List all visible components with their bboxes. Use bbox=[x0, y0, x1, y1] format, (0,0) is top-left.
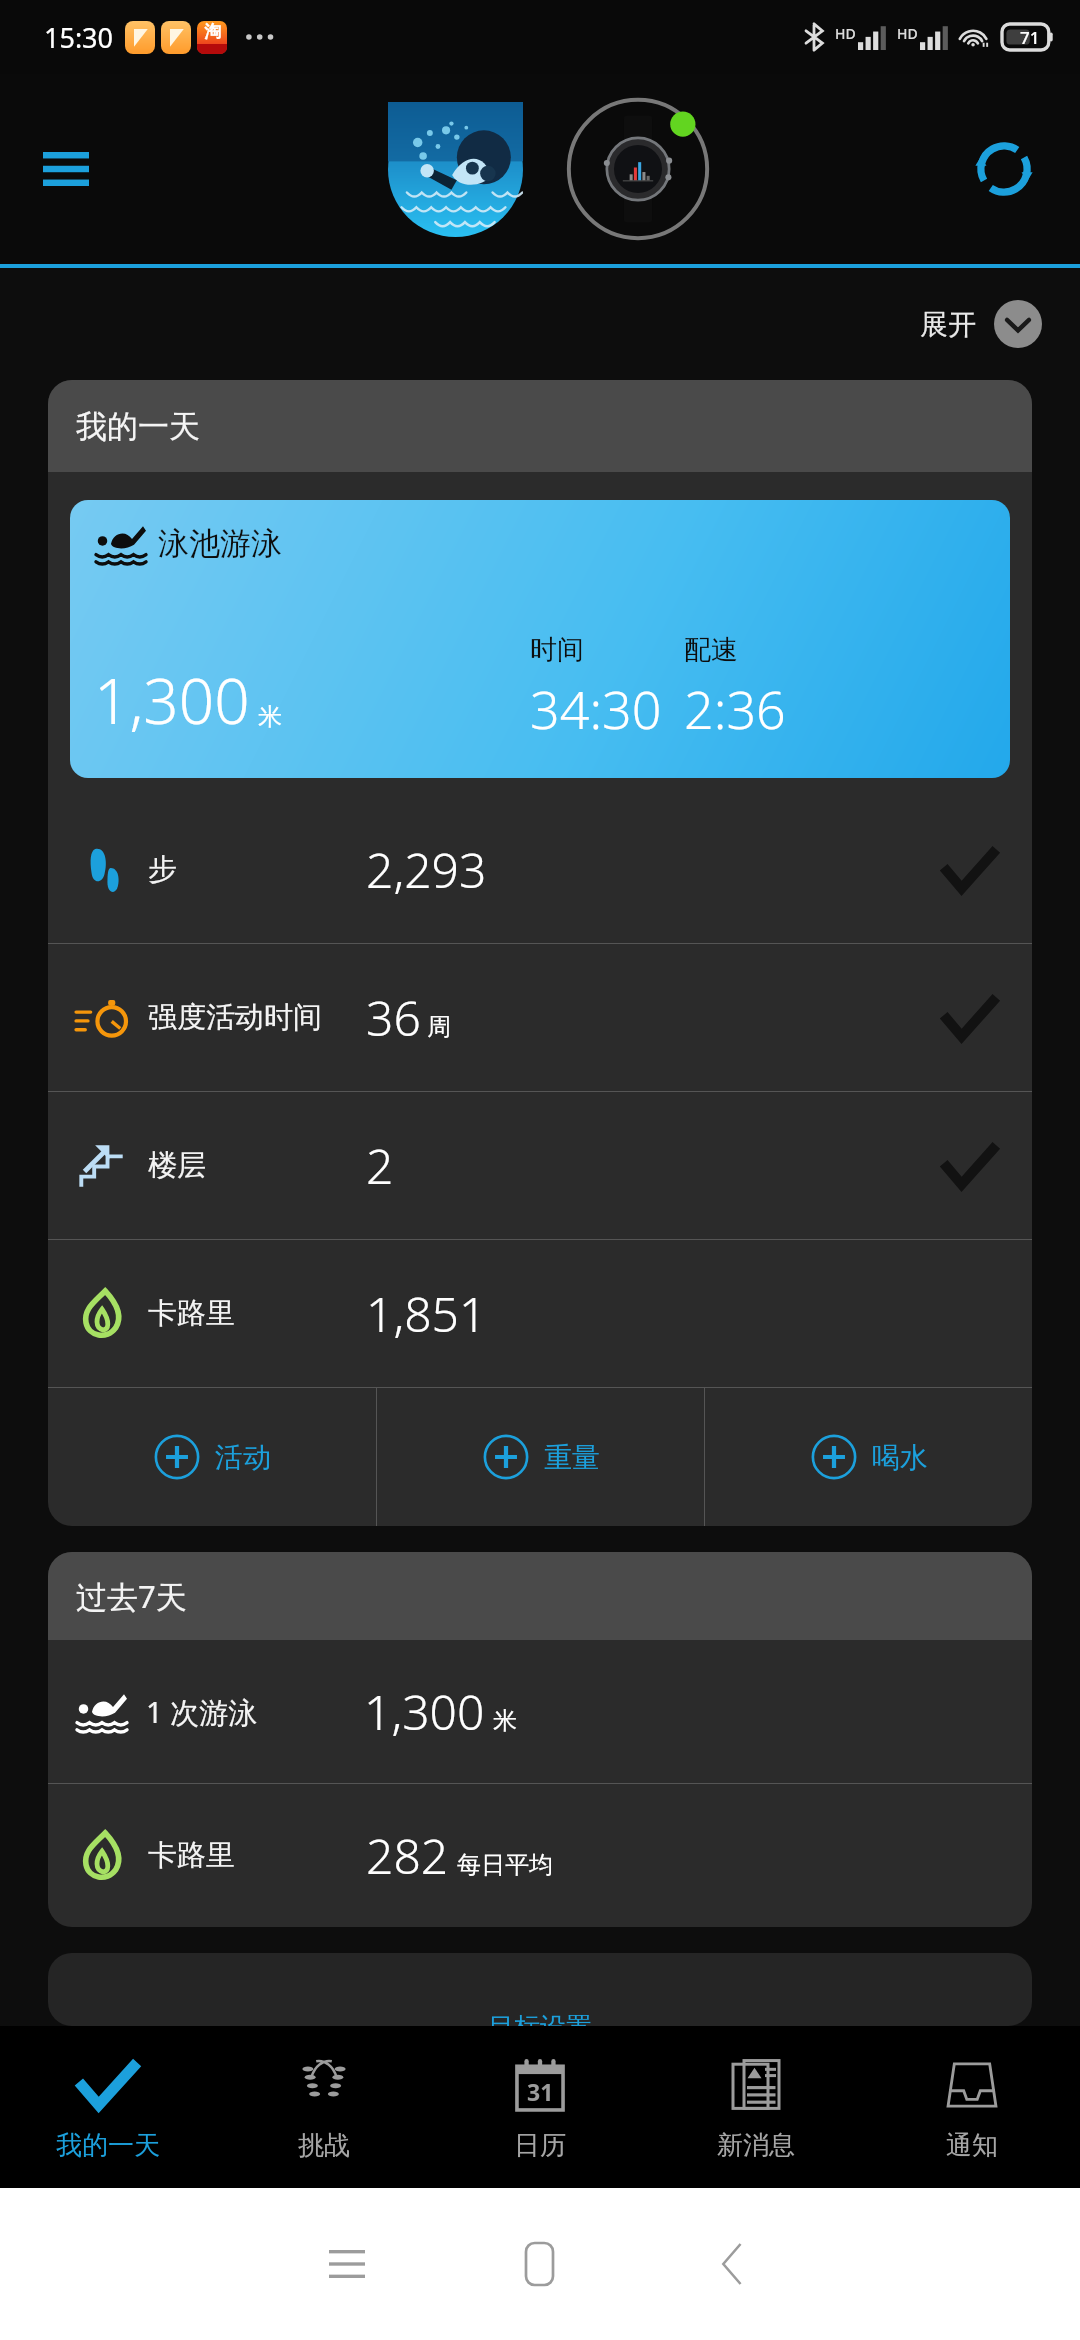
staticText: 36 bbox=[366, 985, 421, 1050]
staticText: 日历 bbox=[514, 2129, 566, 2162]
staticText: 15:30 bbox=[44, 19, 114, 56]
button[interactable]: 过去7天 bbox=[48, 1552, 1032, 1640]
staticText: 34:30 bbox=[530, 673, 662, 744]
button[interactable]: 我的一天 bbox=[0, 2026, 216, 2188]
staticText: 米 bbox=[258, 702, 282, 732]
button[interactable]: Device bbox=[562, 93, 714, 245]
button[interactable]: 新消息 bbox=[648, 2026, 864, 2188]
button[interactable]: 步 bbox=[48, 796, 1032, 943]
button[interactable]: 通知 bbox=[864, 2026, 1080, 2188]
staticText: 淘 bbox=[204, 21, 221, 42]
staticText: 新消息 bbox=[717, 2129, 795, 2162]
staticText: 步 bbox=[148, 851, 366, 888]
staticText: 楼层 bbox=[148, 1147, 366, 1184]
staticText: 1,300 bbox=[94, 658, 250, 742]
staticText: 31 bbox=[527, 2076, 554, 2107]
staticText: 282 bbox=[366, 1823, 449, 1888]
staticText: 卡路里 bbox=[148, 1837, 366, 1874]
staticText: 展开 bbox=[920, 307, 976, 342]
staticText: 1,851 bbox=[366, 1281, 487, 1346]
button[interactable]: 强度活动时间 bbox=[48, 944, 1032, 1091]
staticText: HD bbox=[835, 24, 856, 43]
staticText: HD bbox=[897, 24, 918, 43]
staticText: 2,293 bbox=[366, 837, 487, 902]
staticText: 目标设置 bbox=[488, 2011, 592, 2026]
staticText: 每日平均 bbox=[457, 1850, 553, 1880]
button[interactable]: 喝水 bbox=[705, 1388, 1032, 1526]
staticText: 卡路里 bbox=[148, 1295, 366, 1332]
button[interactable]: Recents bbox=[250, 2229, 443, 2299]
button[interactable]: Menu bbox=[30, 133, 102, 205]
button[interactable]: 楼层 bbox=[48, 1092, 1032, 1239]
staticText: 71 bbox=[1020, 26, 1040, 49]
staticText: 过去7天 bbox=[76, 1575, 187, 1617]
staticText: 米 bbox=[493, 1706, 517, 1736]
staticText: 时间 bbox=[530, 633, 584, 667]
staticText: 喝水 bbox=[872, 1440, 928, 1475]
staticText: 我的一天 bbox=[76, 407, 200, 446]
button[interactable]: 卡路里 bbox=[48, 1240, 1032, 1387]
button[interactable]: 展开 bbox=[912, 292, 1050, 356]
button[interactable]: 31 bbox=[432, 2026, 648, 2188]
button[interactable]: 挑战 bbox=[216, 2026, 432, 2188]
staticText: 重量 bbox=[544, 1440, 600, 1475]
button[interactable]: 活动 bbox=[48, 1388, 376, 1526]
button[interactable]: 1 次游泳 bbox=[48, 1640, 1032, 1783]
staticText: 配速 bbox=[684, 633, 738, 667]
staticText: 泳池游泳 bbox=[158, 524, 282, 563]
staticText: 周 bbox=[427, 1012, 451, 1042]
button[interactable]: Back bbox=[636, 2229, 829, 2299]
button[interactable]: 我的一天 bbox=[48, 380, 1032, 472]
staticText: 挑战 bbox=[298, 2129, 350, 2162]
staticText: 2:36 bbox=[684, 673, 786, 744]
staticText: 1,300 bbox=[364, 1679, 485, 1744]
staticText: 活动 bbox=[215, 1440, 271, 1475]
button[interactable]: Profile bbox=[388, 102, 523, 237]
button[interactable]: Home bbox=[443, 2229, 636, 2299]
staticText: 通知 bbox=[946, 2129, 998, 2162]
button[interactable]: Sync bbox=[962, 127, 1046, 211]
staticText: 强度活动时间 bbox=[148, 999, 366, 1036]
button[interactable]: 目标设置 bbox=[48, 1953, 1032, 2026]
button[interactable]: 重量 bbox=[377, 1388, 704, 1526]
button[interactable]: 泳池游泳 bbox=[70, 500, 1010, 778]
staticText: 我的一天 bbox=[56, 2129, 160, 2162]
button[interactable]: 卡路里 bbox=[48, 1784, 1032, 1927]
staticText: 2 bbox=[366, 1133, 394, 1198]
staticText: 1 次游泳 bbox=[146, 1692, 364, 1732]
